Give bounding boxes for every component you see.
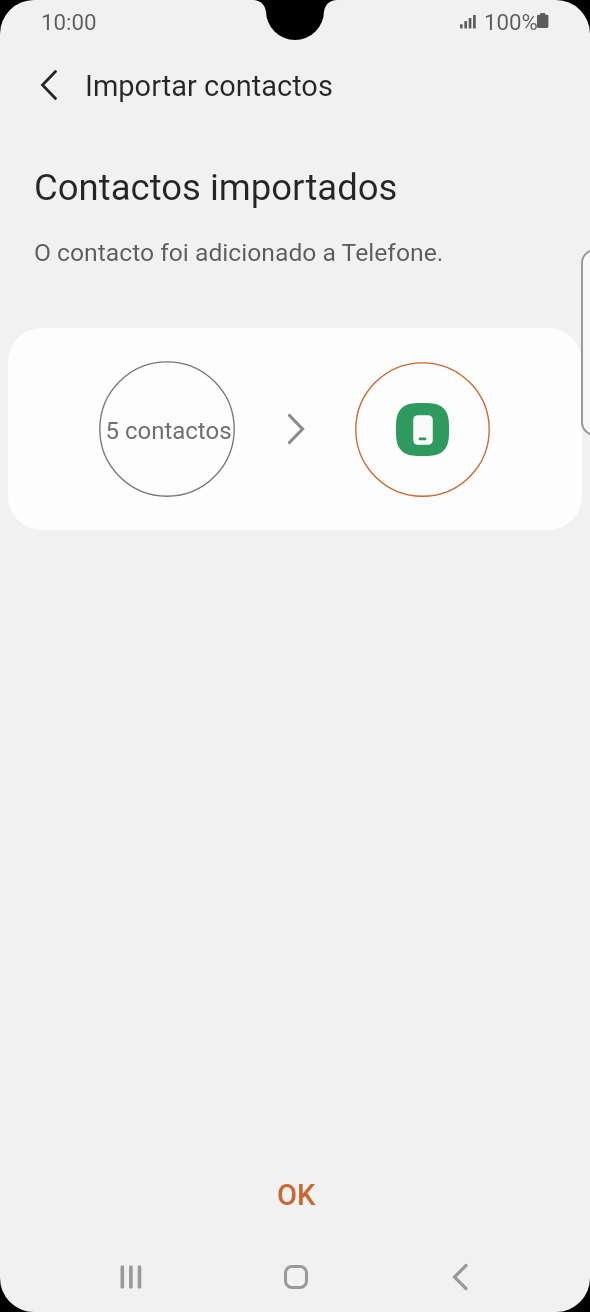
staticText: OK xyxy=(277,1178,316,1212)
staticText: O contacto foi adicionado a Telefone. xyxy=(34,238,444,267)
staticText: Contactos importados xyxy=(34,166,398,209)
button[interactable]: OK xyxy=(236,1166,356,1224)
button[interactable]: Navigate up xyxy=(18,61,82,109)
button[interactable]: Home xyxy=(262,1243,330,1311)
button[interactable]: 5 contactos xyxy=(8,328,582,530)
staticText: Importar contactos xyxy=(85,69,333,103)
button[interactable]: Back xyxy=(427,1243,495,1311)
button[interactable]: Recent apps xyxy=(98,1243,166,1311)
staticText: 5 contactos xyxy=(105,417,232,445)
staticText: 10:00 xyxy=(41,9,97,35)
staticText: 100% xyxy=(484,9,538,35)
